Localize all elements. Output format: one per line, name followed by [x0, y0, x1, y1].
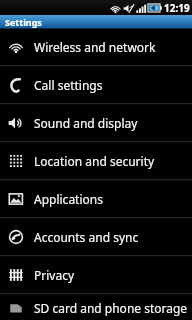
staticText: Settings [5, 16, 42, 28]
staticText: SD card and phone storage [34, 300, 188, 316]
staticText: Wireless and network [34, 39, 156, 55]
staticText: Accounts and sync [34, 229, 139, 245]
button[interactable]: Privacy [0, 257, 192, 293]
staticText: 12:19 [164, 1, 190, 15]
staticText: Call settings [34, 77, 103, 93]
button[interactable]: Accounts and sync [0, 219, 192, 255]
button[interactable]: Location and security [0, 143, 192, 179]
staticText: Privacy [34, 267, 75, 283]
staticText: Sound and display [34, 115, 138, 131]
button[interactable]: Applications [0, 181, 192, 217]
button[interactable]: Sound and display [0, 105, 192, 141]
button[interactable]: SD card and phone storage [0, 295, 192, 320]
staticText: Location and security [34, 153, 155, 169]
button[interactable]: Call settings [0, 67, 192, 103]
staticText: Applications [34, 191, 103, 207]
button[interactable]: Wireless and network [0, 29, 192, 65]
